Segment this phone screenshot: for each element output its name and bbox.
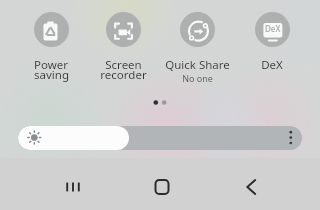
- staticText: Screen: [105, 57, 142, 73]
- button[interactable]: Power: [15, 10, 87, 88]
- staticText: recorder: [100, 67, 147, 82]
- staticText: DeX: [265, 23, 281, 34]
- button[interactable]: Back: [222, 167, 282, 207]
- button[interactable]: Quick Share: [161, 10, 233, 88]
- staticText: saving: [34, 67, 69, 82]
- staticText: Power: [34, 57, 68, 73]
- staticText: DeX: [261, 57, 283, 73]
- staticText: Quick Share: [165, 57, 230, 73]
- button[interactable]: Recents: [43, 167, 103, 207]
- staticText: No one: [182, 72, 213, 84]
- button[interactable]: DeX: [236, 10, 308, 88]
- button[interactable]: Brightness: [18, 126, 302, 150]
- button[interactable]: Screen: [87, 10, 159, 88]
- button[interactable]: Home: [132, 167, 192, 207]
